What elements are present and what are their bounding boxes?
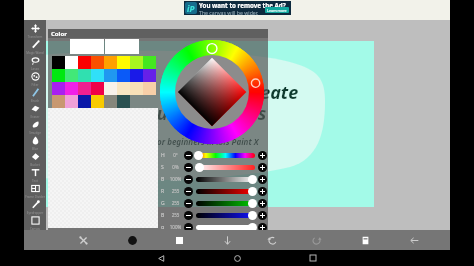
staticText: iP — [187, 3, 195, 14]
button[interactable]: α — [158, 221, 268, 233]
staticText: B — [161, 176, 170, 183]
button[interactable]: B — [158, 173, 268, 185]
staticText: 255 — [167, 212, 184, 218]
button[interactable] — [258, 175, 267, 184]
button[interactable]: Redo — [293, 230, 339, 250]
button[interactable]: Blur — [24, 136, 46, 152]
button[interactable] — [184, 163, 193, 172]
button[interactable] — [258, 151, 267, 160]
button[interactable]: S — [158, 161, 268, 173]
button[interactable]: Brush size — [109, 230, 155, 250]
button[interactable] — [258, 211, 267, 220]
button[interactable]: Text — [24, 168, 46, 184]
staticText: Canvas — [24, 227, 46, 231]
button[interactable]: Back — [391, 230, 437, 250]
button[interactable] — [184, 151, 193, 160]
staticText: Filter — [24, 83, 46, 87]
button[interactable]: Frame Divider — [24, 184, 46, 200]
button[interactable]: Home — [199, 250, 275, 266]
button[interactable]: Colour — [156, 230, 202, 250]
button[interactable]: iP — [184, 1, 291, 15]
button[interactable] — [184, 175, 193, 184]
button[interactable] — [258, 163, 267, 172]
button[interactable] — [184, 187, 193, 196]
button[interactable]: Transform — [24, 24, 46, 40]
staticText: G — [161, 200, 170, 207]
button[interactable]: Eraser — [24, 104, 46, 120]
button[interactable]: Download — [204, 230, 250, 250]
button[interactable]: H — [158, 149, 268, 161]
button[interactable]: R — [158, 185, 268, 197]
staticText: Color — [51, 30, 67, 38]
staticText: Magic Wand — [24, 51, 46, 55]
button[interactable]: Smudge — [24, 120, 46, 136]
button[interactable]: Transform — [60, 230, 106, 250]
button[interactable]: Eyedropper — [24, 200, 46, 216]
staticText: Transform — [24, 35, 46, 39]
staticText: How to create — [180, 80, 299, 105]
staticText: Frame Divider — [24, 195, 46, 199]
button[interactable] — [258, 199, 267, 208]
button[interactable]: Back — [123, 250, 199, 266]
button[interactable]: Layers — [342, 230, 388, 250]
staticText: α — [161, 224, 170, 231]
button[interactable]: Filter — [24, 72, 46, 88]
button[interactable] — [258, 187, 267, 196]
button[interactable] — [258, 223, 267, 232]
staticText: Smudge — [24, 131, 46, 135]
staticText: You want to remove the Ad? — [199, 1, 286, 9]
staticText: 255 — [167, 188, 184, 194]
button[interactable] — [184, 211, 193, 220]
button[interactable]: Lasso — [24, 56, 46, 72]
button[interactable]: Undo — [249, 230, 295, 250]
button[interactable]: Bucket — [24, 152, 46, 168]
staticText: Learn more — [267, 8, 287, 13]
staticText: Eyedropper — [24, 211, 46, 215]
button[interactable] — [184, 199, 193, 208]
button[interactable]: G — [158, 197, 268, 209]
button[interactable]: Brush — [24, 88, 46, 104]
button[interactable]: Canvas — [24, 216, 46, 232]
button[interactable]: Recents — [275, 250, 351, 266]
staticText: Brush — [24, 99, 46, 103]
button[interactable]: B — [158, 209, 268, 221]
button[interactable] — [184, 223, 193, 232]
button[interactable]: Magic Wand — [24, 40, 46, 56]
